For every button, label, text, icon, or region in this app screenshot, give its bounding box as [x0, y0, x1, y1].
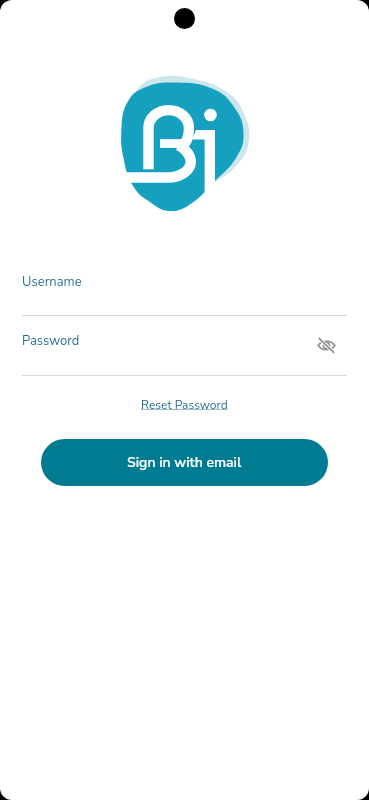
button[interactable]: Show password [313, 332, 339, 358]
button[interactable]: Sign in with email [41, 439, 328, 486]
button[interactable]: Reset Password [131, 391, 238, 419]
staticText: Password [22, 332, 80, 350]
staticText: Sign in with email [127, 453, 242, 472]
staticText: Username [22, 273, 82, 291]
